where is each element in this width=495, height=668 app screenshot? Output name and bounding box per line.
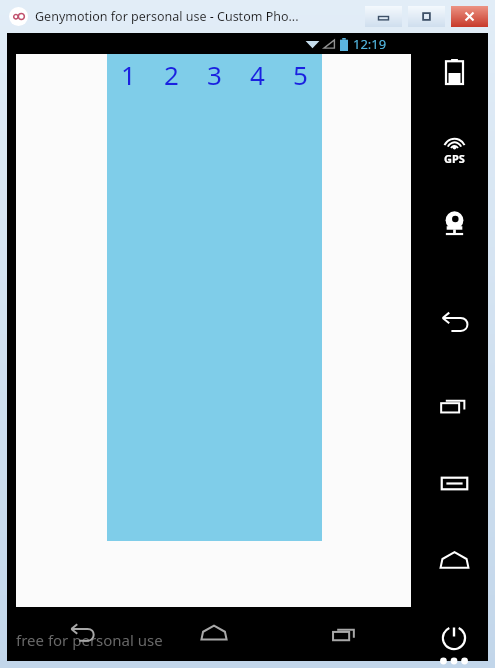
button[interactable]: Recent apps: [428, 379, 480, 431]
button[interactable]: Back: [59, 611, 105, 657]
button[interactable]: 5: [279, 54, 322, 541]
staticText: 12:19: [353, 35, 387, 53]
button[interactable]: 4: [236, 54, 279, 541]
button[interactable]: Back: [428, 297, 480, 349]
button[interactable]: Minimize: [365, 6, 402, 27]
button[interactable]: 2: [150, 54, 193, 541]
staticText: GPS: [444, 151, 465, 166]
button[interactable]: 1: [107, 54, 150, 541]
button[interactable]: Power: [428, 615, 480, 661]
button[interactable]: Menu: [428, 457, 480, 509]
staticText: 1: [107, 57, 150, 92]
button[interactable]: Home: [428, 535, 480, 587]
staticText: free for personal use: [16, 630, 163, 650]
staticText: 5: [279, 57, 322, 92]
button[interactable]: GPS: [428, 131, 480, 171]
staticText: 4: [236, 57, 279, 92]
button[interactable]: Recent apps: [322, 611, 368, 657]
staticText: 3: [193, 57, 236, 92]
button[interactable]: Camera: [428, 197, 480, 249]
staticText: Genymotion for personal use - Custom Pho…: [35, 8, 299, 25]
staticText: 2: [150, 57, 193, 92]
button[interactable]: Battery: [428, 45, 480, 97]
button[interactable]: Home: [191, 611, 237, 657]
button[interactable]: 3: [193, 54, 236, 541]
button[interactable]: Maximize: [408, 6, 445, 27]
button[interactable]: Close: [451, 6, 488, 27]
